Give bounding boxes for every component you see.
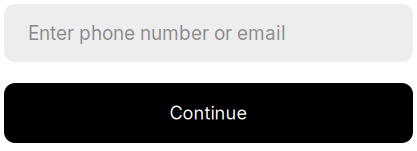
button[interactable]: Enter phone number or email bbox=[4, 4, 413, 62]
button[interactable]: Continue bbox=[4, 83, 413, 143]
staticText: Continue bbox=[169, 102, 247, 124]
staticText: Enter phone number or email bbox=[28, 21, 286, 44]
